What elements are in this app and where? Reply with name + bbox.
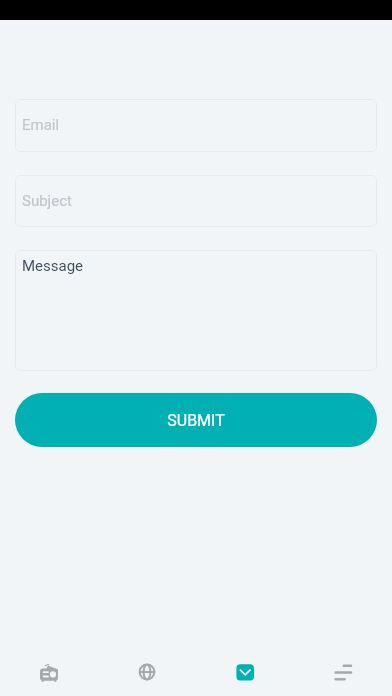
button[interactable]: Email — [15, 99, 377, 152]
button[interactable]: Sort — [294, 648, 392, 696]
button[interactable]: Email — [196, 648, 294, 696]
staticText: Message — [22, 257, 84, 275]
button[interactable]: Subject — [15, 175, 377, 227]
staticText: Email — [22, 116, 60, 134]
button[interactable]: SUBMIT — [15, 393, 377, 447]
button[interactable]: Language — [98, 648, 196, 696]
staticText: Subject — [22, 192, 72, 210]
staticText: SUBMIT — [167, 411, 225, 430]
button[interactable]: Radio — [0, 648, 98, 696]
button[interactable]: Message — [15, 250, 377, 371]
